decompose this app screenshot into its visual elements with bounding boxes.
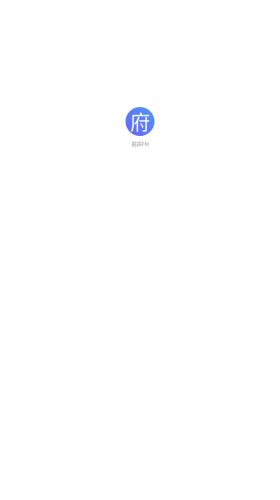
staticText: 府声FM	[131, 140, 148, 148]
staticText: 府	[130, 107, 150, 136]
button[interactable]: 府声FM	[125, 107, 154, 148]
